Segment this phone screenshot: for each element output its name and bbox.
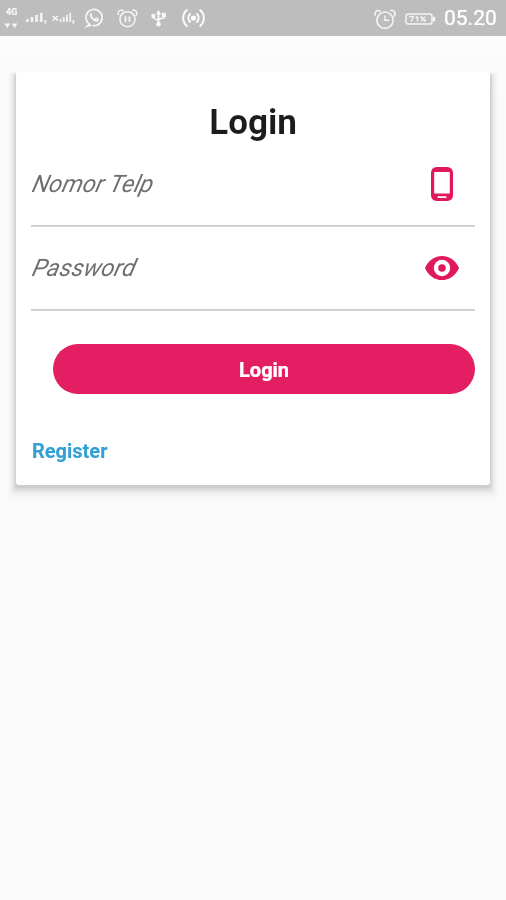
staticText: Nomor Telp	[31, 170, 424, 198]
staticText: Password	[31, 254, 424, 282]
button[interactable]: Show password	[424, 251, 460, 285]
button[interactable]: Login	[53, 344, 475, 394]
button[interactable]: Register	[32, 439, 108, 462]
staticText: 4G	[6, 7, 18, 18]
staticText: Register	[32, 439, 108, 462]
staticText: Login	[239, 358, 290, 381]
staticText: Login	[16, 102, 490, 143]
button[interactable]: Phone number	[424, 167, 460, 201]
staticText: 05.20	[444, 6, 497, 31]
